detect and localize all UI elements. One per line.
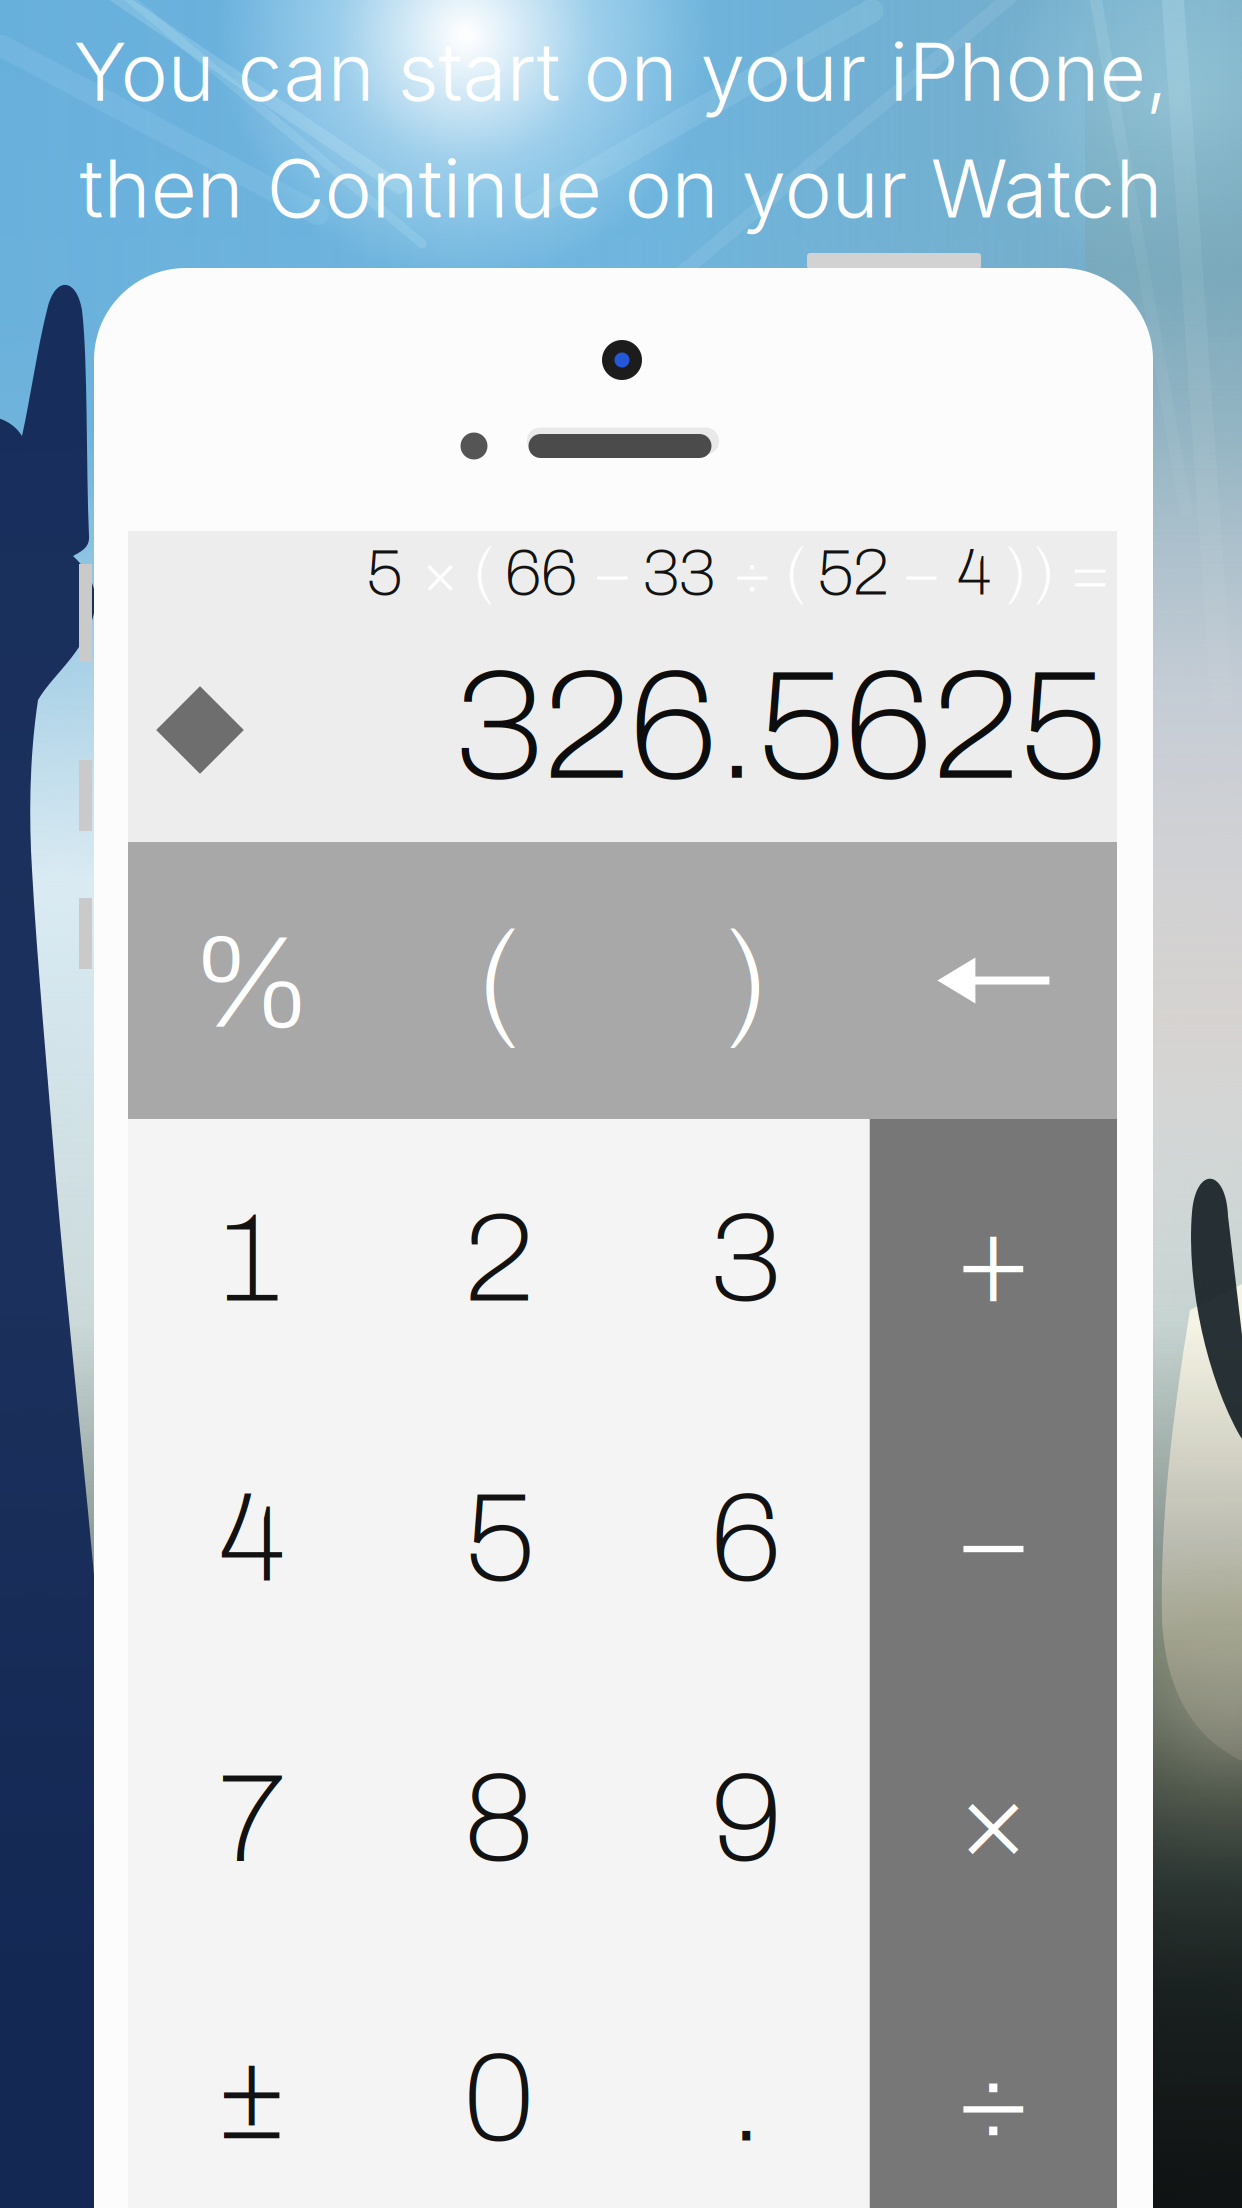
- staticText: (: [475, 910, 522, 1055]
- staticText: 7: [219, 1751, 284, 1886]
- staticText: ): [1004, 538, 1027, 608]
- button[interactable]: ×: [870, 1679, 1117, 1959]
- staticText: =: [1070, 538, 1109, 608]
- staticText: ×: [954, 1750, 1032, 1888]
- button[interactable]: 6: [622, 1399, 870, 1679]
- staticText: 33: [643, 538, 715, 608]
- staticText: 3: [711, 1191, 782, 1326]
- staticText: ×: [420, 538, 459, 608]
- button[interactable]: 7: [128, 1679, 375, 1959]
- staticText: ): [1032, 538, 1055, 608]
- staticText: 52: [817, 538, 889, 608]
- button[interactable]: 3: [622, 1119, 870, 1399]
- button[interactable]: +: [870, 1119, 1117, 1399]
- button[interactable]: 5: [375, 1399, 622, 1679]
- staticText: 8: [463, 1751, 534, 1886]
- staticText: 5: [366, 538, 402, 608]
- staticText: ÷: [732, 538, 771, 608]
- staticText: ±: [216, 2035, 288, 2163]
- button[interactable]: ÷: [870, 1959, 1117, 2208]
- staticText: .: [731, 2031, 762, 2166]
- button[interactable]: 1: [128, 1119, 375, 1399]
- staticText: then Continue on your Watch: [79, 140, 1162, 237]
- staticText: 2: [464, 1191, 533, 1326]
- staticText: 0: [463, 2031, 534, 2166]
- button[interactable]: 0: [375, 1959, 622, 2208]
- button[interactable]: Delete: [870, 842, 1117, 1119]
- staticText: 4: [957, 538, 991, 608]
- staticText: %: [191, 911, 313, 1054]
- button[interactable]: 4: [128, 1399, 375, 1679]
- staticText: 9: [711, 1751, 782, 1886]
- staticText: ): [723, 910, 770, 1055]
- button[interactable]: ): [622, 844, 870, 1121]
- staticText: You can start on your iPhone,: [73, 23, 1168, 120]
- button[interactable]: %: [128, 844, 375, 1121]
- staticText: 326.5625: [455, 642, 1106, 810]
- staticText: 66: [505, 538, 577, 608]
- button[interactable]: −: [870, 1399, 1117, 1679]
- staticText: 6: [711, 1471, 782, 1606]
- staticText: 1: [223, 1191, 280, 1326]
- staticText: −: [954, 1470, 1032, 1608]
- button[interactable]: 2: [375, 1119, 622, 1399]
- button[interactable]: ±: [128, 1959, 375, 2208]
- button[interactable]: .: [622, 1959, 870, 2208]
- staticText: +: [954, 1190, 1032, 1328]
- staticText: ÷: [954, 2030, 1032, 2168]
- staticText: (: [472, 538, 495, 608]
- staticText: (: [784, 538, 807, 608]
- staticText: 4: [219, 1471, 285, 1606]
- button[interactable]: (: [375, 844, 622, 1121]
- button[interactable]: 9: [622, 1679, 870, 1959]
- staticText: 5: [464, 1471, 534, 1606]
- button[interactable]: 8: [375, 1679, 622, 1959]
